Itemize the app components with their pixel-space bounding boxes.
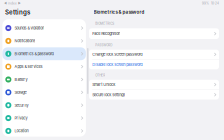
staticText: Face Recognition (92, 31, 120, 36)
button[interactable]: Security (2, 99, 86, 112)
staticText: Secure lock settings (92, 92, 125, 97)
staticText: Disable lock screen password (92, 62, 142, 67)
button[interactable]: Privacy (2, 112, 86, 125)
button[interactable]: Biometrics & password (2, 47, 86, 60)
staticText: 99% 10:24 (202, 2, 219, 5)
button[interactable]: Battery (2, 73, 86, 86)
staticText: Sounds & vibration (14, 26, 44, 30)
staticText: Smart Unlock (92, 82, 115, 87)
staticText: PASSWORD (95, 43, 112, 47)
staticText: Change lock screen password (92, 52, 142, 57)
staticText: Biometrics & password (94, 9, 145, 15)
button[interactable]: Location (2, 124, 86, 137)
staticText: Storage (14, 90, 26, 95)
staticText: Biometrics & password (14, 51, 53, 56)
staticText: Battery (14, 77, 27, 82)
staticText: ◀ index ▶ (4, 2, 21, 5)
staticText: BIOMETRICS (95, 22, 114, 25)
staticText: Location (14, 129, 28, 133)
staticText: OTHER (95, 73, 105, 77)
button[interactable]: Disable lock screen password (89, 60, 219, 69)
button[interactable]: Smart Unlock (89, 80, 219, 89)
button[interactable]: Face Recognition (89, 28, 219, 39)
button[interactable]: Secure lock settings (89, 90, 219, 100)
button[interactable]: Apps & services (2, 60, 86, 73)
staticText: Security (14, 103, 28, 108)
button[interactable]: Sounds & vibration (2, 22, 86, 34)
staticText: Settings (5, 9, 30, 16)
button[interactable]: Storage (2, 86, 86, 99)
staticText: Apps & services (14, 64, 42, 69)
button[interactable]: Notifications (2, 34, 86, 47)
staticText: Privacy (14, 116, 27, 120)
staticText: Notifications (14, 39, 35, 43)
button[interactable]: Change lock screen password (89, 49, 219, 59)
